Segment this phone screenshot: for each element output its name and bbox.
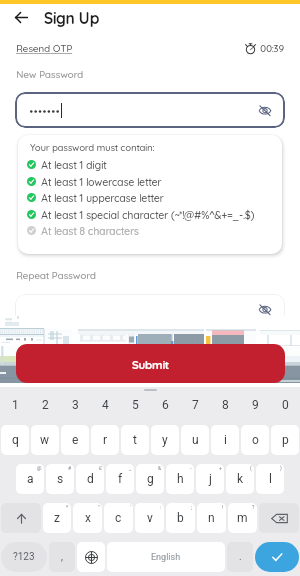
staticText: y <box>162 433 168 447</box>
button[interactable]: e <box>61 425 89 455</box>
button[interactable]: y <box>151 425 179 455</box>
staticText: b <box>177 511 184 525</box>
staticText: Your password must contain: <box>30 141 154 153</box>
staticText: p <box>282 433 289 447</box>
button[interactable]: p <box>271 425 299 455</box>
staticText: " <box>98 504 100 510</box>
staticText: 6 <box>162 398 169 412</box>
button[interactable]: Show password <box>15 294 285 324</box>
staticText: 5 <box>132 398 139 412</box>
staticText: d <box>87 472 94 486</box>
button[interactable]: m <box>228 503 257 533</box>
staticText: ; <box>191 504 193 510</box>
staticText: f <box>118 472 123 486</box>
staticText: o <box>252 433 259 447</box>
button[interactable]: Change keyboard language <box>77 542 105 572</box>
button[interactable]: Submit <box>16 344 285 383</box>
button[interactable]: o <box>241 425 269 455</box>
staticText: # <box>68 465 72 471</box>
button[interactable]: 6 <box>150 394 180 416</box>
button[interactable]: j <box>196 464 224 494</box>
button[interactable]: 3 <box>60 394 90 416</box>
staticText: . <box>239 551 242 563</box>
staticText: & <box>158 465 162 471</box>
button[interactable]: Show password <box>256 101 274 119</box>
button[interactable]: Show password <box>256 300 274 318</box>
button[interactable]: s <box>46 464 74 494</box>
button[interactable]: h <box>166 464 194 494</box>
staticText: ' <box>130 504 131 510</box>
staticText: Sign Up <box>44 8 99 27</box>
button[interactable]: Shift <box>1 503 41 533</box>
staticText: * <box>66 504 69 510</box>
staticText: ?123 <box>13 551 35 563</box>
button[interactable]: , <box>49 542 75 572</box>
staticText: v <box>147 511 153 525</box>
staticText: - <box>190 465 192 471</box>
button[interactable]: i <box>211 425 239 455</box>
button[interactable]: ?123 <box>1 542 47 572</box>
staticText: l <box>269 472 272 486</box>
staticText: 8 <box>222 398 229 412</box>
staticText: Submit <box>132 357 169 371</box>
button[interactable]: l <box>256 464 284 494</box>
staticText: a <box>27 472 34 486</box>
staticText: r <box>103 433 108 447</box>
staticText: e <box>72 433 79 447</box>
button[interactable]: b <box>166 503 195 533</box>
staticText: t <box>133 433 137 447</box>
staticText: 7 <box>192 398 199 412</box>
button[interactable]: 1 <box>0 394 30 416</box>
staticText: + <box>219 465 222 471</box>
button[interactable]: g <box>136 464 164 494</box>
button[interactable]: 8 <box>210 394 240 416</box>
staticText: Repeat Password <box>16 269 96 282</box>
button[interactable]: Back <box>10 6 32 28</box>
staticText: 4 <box>102 398 109 412</box>
button[interactable]: 4 <box>90 394 120 416</box>
button[interactable]: 0 <box>270 394 300 416</box>
staticText: c <box>115 511 122 525</box>
button[interactable]: x <box>73 503 102 533</box>
staticText: At least 1 special character (~*!@#%^&+=… <box>41 208 255 221</box>
button[interactable]: a <box>16 464 44 494</box>
button[interactable]: 2 <box>30 394 60 416</box>
button[interactable]: u <box>181 425 209 455</box>
button[interactable]: q <box>1 425 29 455</box>
staticText: English <box>151 552 181 563</box>
button[interactable]: Show password <box>15 92 285 128</box>
button[interactable]: d <box>76 464 104 494</box>
staticText: At least 8 characters <box>41 224 139 237</box>
button[interactable]: r <box>91 425 119 455</box>
button[interactable]: Enter <box>255 542 299 572</box>
button[interactable]: 5 <box>120 394 150 416</box>
button[interactable]: f <box>106 464 134 494</box>
button[interactable]: n <box>197 503 226 533</box>
staticText: k <box>237 472 244 486</box>
staticText: q <box>12 433 19 447</box>
button[interactable]: k <box>226 464 254 494</box>
button[interactable]: v <box>135 503 164 533</box>
staticText: j <box>209 472 212 486</box>
staticText: At least 1 digit <box>41 158 107 171</box>
staticText: i <box>224 433 227 447</box>
button[interactable]: z <box>43 503 71 533</box>
staticText: 00:39 <box>260 42 285 55</box>
button[interactable]: 9 <box>240 394 270 416</box>
button[interactable]: English <box>107 542 225 572</box>
staticText: ) <box>280 465 282 471</box>
staticText: n <box>208 511 215 525</box>
staticText: 0 <box>282 398 289 412</box>
staticText: : <box>160 504 162 510</box>
staticText: At least 1 uppercase letter <box>41 191 164 204</box>
button[interactable]: Resend OTP <box>16 42 73 55</box>
button[interactable]: t <box>121 425 149 455</box>
button[interactable]: . <box>227 542 253 572</box>
button[interactable]: w <box>31 425 59 455</box>
button[interactable]: c <box>104 503 133 533</box>
staticText: g <box>147 472 154 486</box>
button[interactable]: Backspace <box>259 503 299 533</box>
staticText: m <box>237 511 248 525</box>
button[interactable]: 7 <box>180 394 210 416</box>
staticText: w <box>40 433 50 447</box>
